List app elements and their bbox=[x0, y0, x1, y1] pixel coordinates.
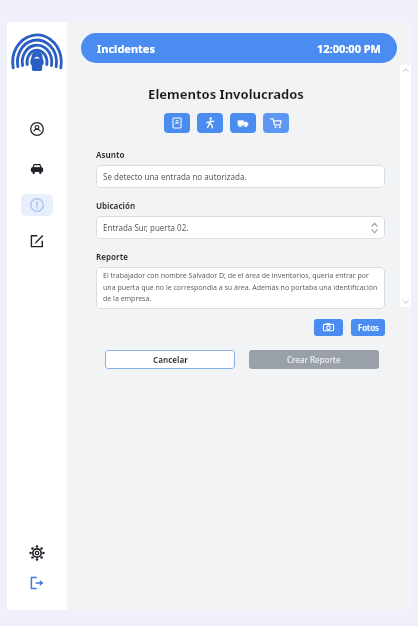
staticText: Se detecto una entrada no autorizada. bbox=[103, 171, 247, 182]
staticText: El trabajador con nombre Salvador D; de … bbox=[103, 271, 380, 303]
staticText: Asunto bbox=[96, 149, 125, 160]
button[interactable]: Persona bbox=[197, 113, 223, 133]
button[interactable]: Crear Reporte bbox=[249, 350, 379, 369]
button[interactable]: Identificacion bbox=[164, 113, 190, 133]
staticText: Elementos Involucrados bbox=[67, 85, 385, 103]
button[interactable]: El trabajador con nombre Salvador D; de … bbox=[96, 267, 385, 309]
button[interactable]: Salir bbox=[21, 572, 53, 594]
button[interactable]: Tomar foto bbox=[314, 319, 343, 336]
button[interactable]: Vehiculos bbox=[21, 158, 53, 180]
button[interactable]: Perfil bbox=[21, 118, 53, 140]
staticText: Incidentes bbox=[97, 41, 155, 56]
button[interactable]: Ajustes bbox=[21, 542, 53, 564]
button[interactable]: Incidentes bbox=[81, 33, 397, 63]
button[interactable]: Cancelar bbox=[105, 350, 235, 369]
button[interactable]: Entrada Sur, puerta 02. bbox=[96, 216, 385, 239]
button[interactable]: Incidentes bbox=[21, 194, 53, 216]
button[interactable]: Se detecto una entrada no autorizada. bbox=[96, 165, 385, 188]
staticText: Crear Reporte bbox=[287, 354, 341, 365]
staticText: Entrada Sur, puerta 02. bbox=[103, 222, 189, 233]
staticText: Ubicación bbox=[96, 200, 136, 211]
button[interactable]: Fotos bbox=[351, 319, 385, 336]
button[interactable]: Mercancia bbox=[263, 113, 289, 133]
staticText: 12:00:00 PM bbox=[317, 41, 381, 56]
button[interactable]: Vehiculo bbox=[230, 113, 256, 133]
button[interactable]: Reportes bbox=[21, 230, 53, 252]
staticText: Fotos bbox=[358, 322, 379, 333]
staticText: Reporte bbox=[96, 251, 128, 262]
staticText: Cancelar bbox=[153, 354, 188, 365]
